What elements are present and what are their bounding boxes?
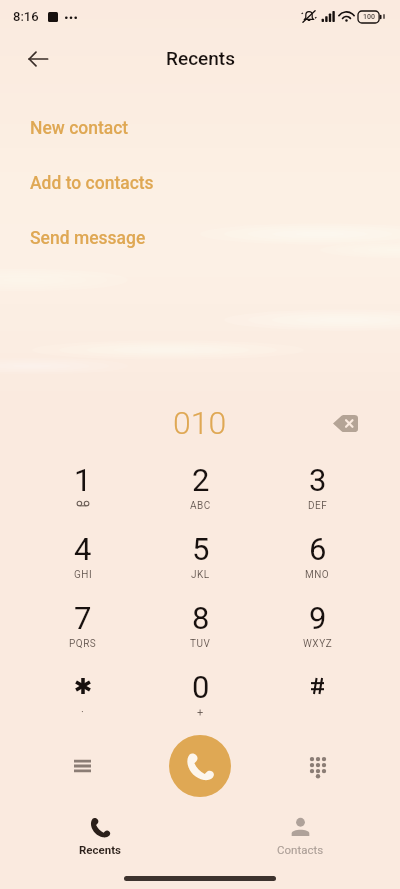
button[interactable]: 7	[24, 588, 142, 657]
staticText: ·	[81, 706, 85, 719]
staticText: 5	[192, 531, 210, 567]
staticText: 1	[74, 462, 92, 498]
button[interactable]: Send message	[0, 211, 400, 266]
button[interactable]: Contacts	[200, 808, 400, 866]
staticText: 010	[173, 404, 227, 442]
button[interactable]: 8	[142, 588, 259, 657]
button[interactable]: 9	[259, 588, 376, 657]
staticText: +	[197, 706, 204, 719]
staticText: 8:16	[13, 9, 39, 24]
staticText: Add to contacts	[30, 173, 154, 194]
staticText: 4	[74, 531, 92, 567]
button[interactable]: Add to contacts	[0, 156, 400, 211]
button[interactable]: 2	[142, 450, 259, 519]
button[interactable]: Recents	[0, 808, 200, 866]
staticText: 3	[309, 462, 327, 498]
staticText: 8	[192, 600, 210, 636]
button[interactable]	[259, 657, 376, 726]
staticText: MNO	[305, 569, 330, 581]
staticText: New contact	[30, 118, 129, 139]
staticText: Recents	[79, 843, 122, 856]
staticText: 2	[192, 462, 210, 498]
staticText: Contacts	[277, 843, 324, 856]
button[interactable]: 0	[142, 657, 259, 726]
button[interactable]: 3	[259, 450, 376, 519]
staticText: 100	[363, 13, 375, 21]
staticText: GHI	[74, 569, 93, 581]
button[interactable]: Backspace	[324, 402, 366, 444]
button[interactable]: Call log options	[59, 743, 105, 789]
staticText: ABC	[190, 500, 211, 512]
staticText: TUV	[190, 638, 211, 650]
staticText: PQRS	[69, 638, 97, 650]
staticText: DEF	[308, 500, 328, 512]
button[interactable]: ·	[24, 657, 142, 726]
button[interactable]: Dialpad	[295, 743, 341, 789]
staticText: WXYZ	[303, 638, 333, 650]
staticText: Send message	[30, 228, 146, 249]
button[interactable]: Back	[17, 38, 59, 80]
staticText: Recents	[166, 47, 235, 69]
button[interactable]: Call	[169, 735, 231, 797]
button[interactable]: 6	[259, 519, 376, 588]
button[interactable]: 1	[24, 450, 142, 519]
button[interactable]: 4	[24, 519, 142, 588]
staticText: 7	[74, 600, 92, 636]
staticText: 9	[309, 600, 327, 636]
staticText: 0	[192, 669, 210, 705]
staticText: JKL	[191, 569, 210, 581]
button[interactable]: New contact	[0, 101, 400, 156]
staticText: 6	[309, 531, 327, 567]
button[interactable]: 5	[142, 519, 259, 588]
